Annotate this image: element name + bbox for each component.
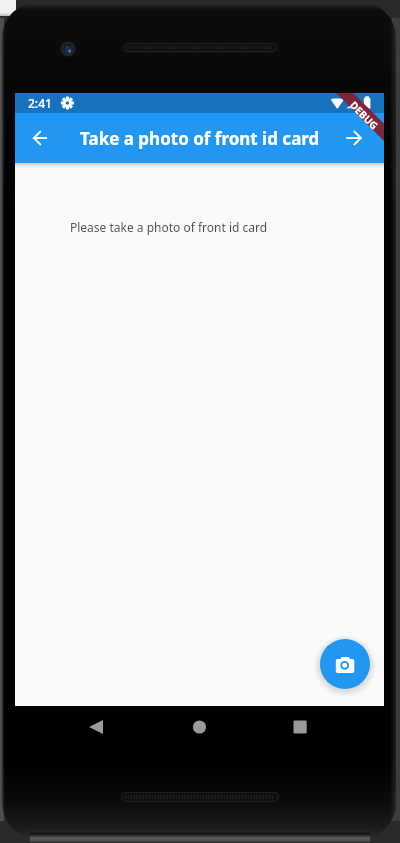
button[interactable]: Next xyxy=(334,118,374,158)
staticText: Please take a photo of front id card xyxy=(70,219,268,235)
staticText: DEBUG xyxy=(347,98,382,133)
button[interactable]: Back xyxy=(20,118,60,158)
staticText: 2:41 xyxy=(28,95,52,111)
button[interactable]: Take photo xyxy=(320,639,370,689)
staticText: Take a photo of front id card xyxy=(80,127,320,150)
